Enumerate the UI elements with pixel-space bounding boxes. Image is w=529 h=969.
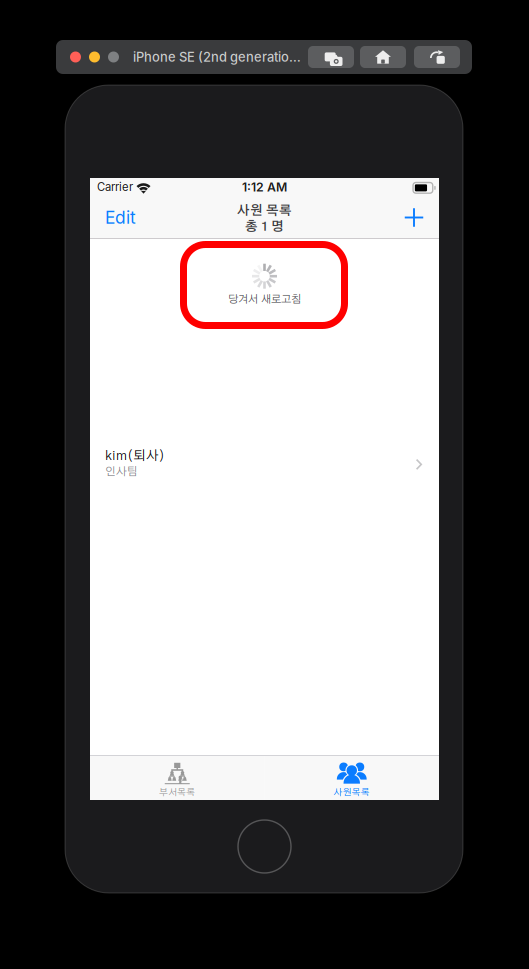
staticText: kim(퇴사) — [105, 449, 165, 463]
staticText: 당겨서 새로고침 — [228, 294, 301, 305]
button[interactable]: 사원목록 — [264, 755, 439, 800]
staticText: 총 1 명 — [245, 221, 284, 233]
staticText: 부서목록 — [159, 788, 195, 797]
staticText: 인사팀 — [105, 466, 138, 478]
button[interactable]: Rotate — [414, 46, 460, 68]
button[interactable]: Screenshot — [308, 46, 354, 68]
staticText: 1:12 AM — [242, 180, 287, 194]
staticText: 사원목록 — [334, 788, 370, 797]
button[interactable]: Add employee — [392, 196, 436, 239]
button[interactable]: Home — [360, 46, 406, 68]
staticText: Carrier — [97, 180, 133, 194]
staticText: iPhone SE (2nd generatio… — [133, 49, 301, 65]
staticText: Edit — [105, 207, 136, 228]
button[interactable]: kim(퇴사) — [90, 441, 439, 482]
button[interactable]: Edit — [90, 196, 163, 239]
button[interactable]: 부서목록 — [90, 755, 264, 800]
staticText: 사원 목록 — [237, 205, 292, 217]
